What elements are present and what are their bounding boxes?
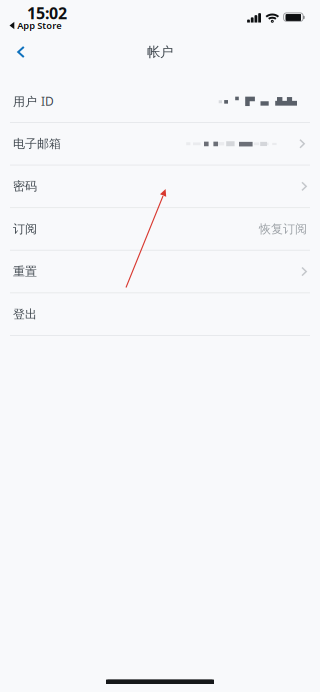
button[interactable]: 重置	[0, 251, 320, 293]
button[interactable]: Back	[4, 36, 38, 68]
staticText: 15:02	[27, 2, 67, 23]
staticText: 恢复订阅	[259, 222, 307, 236]
button[interactable]: 密码	[0, 165, 320, 208]
staticText: App Store	[17, 19, 61, 32]
button[interactable]: 电子邮箱	[0, 123, 320, 165]
staticText: 密码	[13, 179, 37, 194]
button[interactable]: 用户 ID	[0, 80, 320, 123]
staticText: 帐户	[147, 44, 173, 60]
staticText: 登出	[13, 307, 37, 321]
button[interactable]: 登出	[0, 293, 320, 336]
staticText: 电子邮箱	[13, 136, 61, 151]
staticText: 订阅	[13, 222, 37, 236]
staticText: 用户 ID	[13, 93, 54, 109]
staticText: 重置	[13, 264, 37, 279]
button[interactable]: 订阅	[0, 208, 320, 251]
